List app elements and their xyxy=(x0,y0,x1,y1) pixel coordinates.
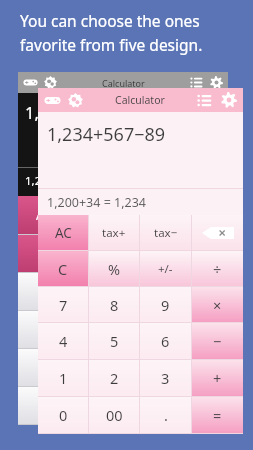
button[interactable]: Settings xyxy=(210,76,223,89)
button[interactable]: Settings xyxy=(221,92,237,108)
button[interactable]: × xyxy=(176,273,228,310)
button[interactable]: 4 xyxy=(18,311,69,348)
button[interactable]: History xyxy=(190,76,203,89)
staticText: + xyxy=(213,368,222,388)
staticText: − xyxy=(213,331,222,351)
button[interactable]: tax− xyxy=(123,196,175,234)
button[interactable]: − xyxy=(192,323,243,359)
button[interactable]: tax+ xyxy=(89,215,139,250)
button[interactable]: + xyxy=(192,360,243,396)
button[interactable]: +/- xyxy=(123,235,175,272)
staticText: tax+ xyxy=(102,225,126,241)
staticText: 9 xyxy=(145,283,153,300)
staticText: 7 xyxy=(40,283,48,300)
button[interactable]: C xyxy=(38,251,88,286)
button[interactable]: ÷ xyxy=(176,235,228,272)
staticText: 0 xyxy=(59,405,68,425)
button[interactable] xyxy=(176,196,228,234)
staticText: +/- xyxy=(158,261,173,277)
staticText: + xyxy=(198,359,206,376)
button[interactable]: % xyxy=(70,235,122,272)
staticText: tax− xyxy=(139,209,159,222)
staticText: AC xyxy=(36,207,52,224)
staticText: × xyxy=(213,295,222,315)
staticText: 1,234+567−89 xyxy=(47,122,166,147)
staticText: = xyxy=(198,397,206,414)
button[interactable]: +/- xyxy=(140,251,191,286)
staticText: 1 xyxy=(59,368,68,388)
button[interactable]: 3 xyxy=(123,349,175,386)
button[interactable]: History xyxy=(197,93,212,108)
staticText: tax+ xyxy=(86,209,106,222)
button[interactable]: Tax settings xyxy=(68,93,83,108)
button[interactable]: − xyxy=(176,311,228,348)
staticText: 1,200+34 = 1,234 xyxy=(25,173,117,189)
staticText: % xyxy=(91,245,102,262)
staticText: AC xyxy=(55,224,72,242)
staticText: +/- xyxy=(143,247,156,260)
button[interactable]: tax+ xyxy=(70,196,122,234)
button[interactable]: % xyxy=(89,251,139,286)
staticText: tax− xyxy=(154,225,178,241)
staticText: 5 xyxy=(110,331,119,351)
staticText: favorite from five design. xyxy=(20,34,203,55)
button[interactable]: 9 xyxy=(123,273,175,310)
staticText: 4 xyxy=(40,321,48,338)
staticText: 1,234+567−89 xyxy=(25,101,134,123)
button[interactable]: 7 xyxy=(18,273,69,310)
staticText: 8 xyxy=(110,295,119,315)
button[interactable]: 00 xyxy=(89,397,139,433)
staticText: You can choose the ones xyxy=(20,10,200,31)
button[interactable]: . xyxy=(123,387,175,424)
button[interactable]: Backspace xyxy=(192,215,243,250)
staticText: 5 xyxy=(92,321,100,338)
button[interactable]: 1 xyxy=(18,349,69,386)
staticText: 7 xyxy=(59,295,68,315)
staticText: C xyxy=(58,259,68,279)
button[interactable]: ÷ xyxy=(192,251,243,286)
button[interactable]: AC xyxy=(18,196,69,234)
button[interactable]: 5 xyxy=(70,311,122,348)
button[interactable]: 4 xyxy=(38,323,88,359)
button[interactable]: 2 xyxy=(70,349,122,386)
button[interactable]: AC xyxy=(38,215,88,250)
button[interactable]: Tax xyxy=(44,76,57,89)
button[interactable]: 00 xyxy=(70,387,122,424)
staticText: 9 xyxy=(161,295,170,315)
button[interactable]: C xyxy=(18,235,69,272)
button[interactable]: × xyxy=(192,287,243,322)
staticText: . xyxy=(164,405,168,425)
staticText: 00 xyxy=(106,405,123,425)
button[interactable]: + xyxy=(176,349,228,386)
button[interactable]: 1 xyxy=(38,360,88,396)
button[interactable]: 0 xyxy=(18,387,69,424)
button[interactable]: 0 xyxy=(38,397,88,433)
staticText: ÷ xyxy=(213,259,222,279)
button[interactable]: = xyxy=(192,397,243,433)
button[interactable]: Games xyxy=(23,75,38,90)
staticText: × xyxy=(198,283,206,300)
button[interactable]: 9 xyxy=(140,287,191,322)
staticText: 2 xyxy=(110,368,119,388)
button[interactable]: 7 xyxy=(38,287,88,322)
staticText: C xyxy=(40,245,48,262)
button[interactable]: Games xyxy=(44,92,61,109)
button[interactable]: 3 xyxy=(140,360,191,396)
staticText: 4 xyxy=(59,331,68,351)
button[interactable]: tax− xyxy=(140,215,191,250)
staticText: − xyxy=(198,321,206,338)
button[interactable]: 8 xyxy=(89,287,139,322)
button[interactable]: = xyxy=(176,387,228,424)
button[interactable]: 2 xyxy=(89,360,139,396)
other: Backspace xyxy=(202,227,234,239)
staticText: 3 xyxy=(161,368,170,388)
button[interactable]: 8 xyxy=(70,273,122,310)
staticText: 8 xyxy=(92,283,100,300)
button[interactable]: . xyxy=(140,397,191,433)
button[interactable]: 6 xyxy=(140,323,191,359)
staticText: 6 xyxy=(161,331,170,351)
button[interactable]: 6 xyxy=(123,311,175,348)
button[interactable]: 5 xyxy=(89,323,139,359)
